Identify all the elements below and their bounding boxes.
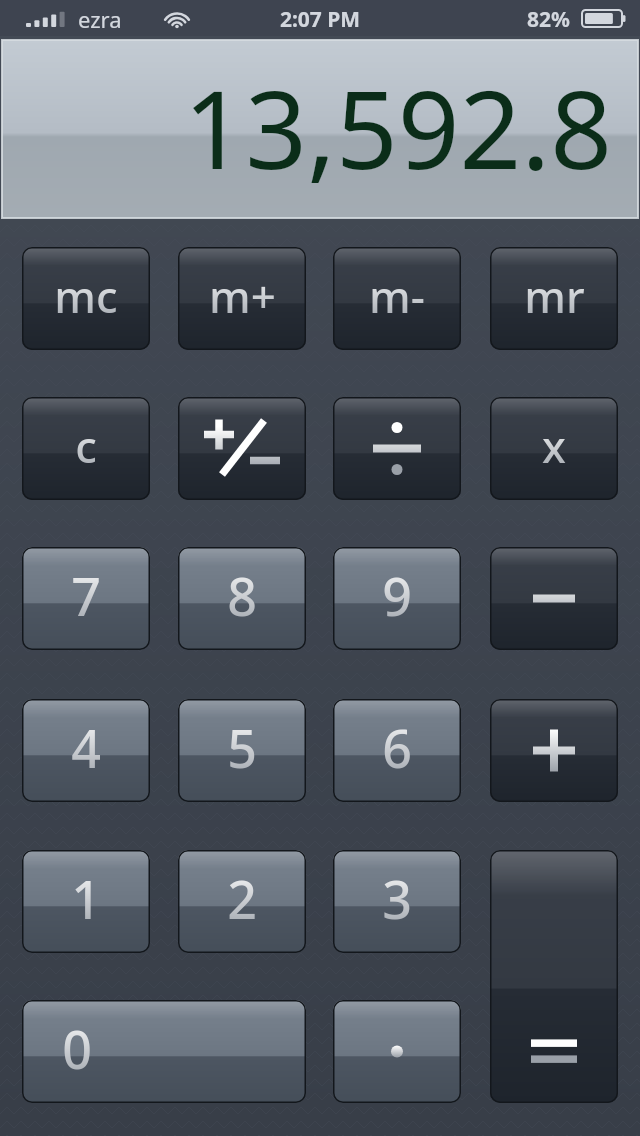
button[interactable]: x xyxy=(490,397,618,500)
button[interactable]: Divide xyxy=(333,397,461,500)
button[interactable]: 1 xyxy=(22,850,150,953)
button[interactable]: mr xyxy=(490,247,618,350)
button[interactable]: c xyxy=(22,397,150,500)
staticText: 7 xyxy=(71,560,101,631)
button[interactable]: m+ xyxy=(178,247,306,350)
staticText: 0 xyxy=(62,1013,92,1084)
staticText: 4 xyxy=(71,712,101,783)
staticText: m+ xyxy=(209,266,276,326)
button[interactable]: Equals xyxy=(490,850,618,1103)
staticText: 2:07 PM xyxy=(0,5,640,31)
button[interactable]: Plus xyxy=(490,699,618,802)
button[interactable]: Decimal point xyxy=(333,1000,461,1103)
button[interactable]: 8 xyxy=(178,547,306,650)
button[interactable]: 3 xyxy=(333,850,461,953)
staticText: 13,592.8 xyxy=(2,54,612,204)
staticText: ezra xyxy=(78,4,122,34)
button[interactable]: m- xyxy=(333,247,461,350)
staticText: mc xyxy=(54,266,118,326)
staticText: 5 xyxy=(227,712,257,783)
button[interactable]: 0 xyxy=(22,1000,306,1103)
staticText: c xyxy=(75,416,97,476)
button[interactable]: 6 xyxy=(333,699,461,802)
button[interactable]: Plus minus xyxy=(178,397,306,500)
button[interactable]: 5 xyxy=(178,699,306,802)
staticText: x xyxy=(542,416,566,476)
staticText: 8 xyxy=(227,560,257,631)
staticText: 82% xyxy=(527,5,570,34)
button[interactable]: 9 xyxy=(333,547,461,650)
staticText: 1 xyxy=(71,863,101,934)
button[interactable]: 7 xyxy=(22,547,150,650)
button[interactable]: Minus xyxy=(490,547,618,650)
staticText: mr xyxy=(524,266,585,326)
staticText: 3 xyxy=(382,863,412,934)
button[interactable]: mc xyxy=(22,247,150,350)
staticText: m- xyxy=(369,266,425,326)
staticText: 6 xyxy=(382,712,412,783)
staticText: 2 xyxy=(227,863,257,934)
button[interactable]: 2 xyxy=(178,850,306,953)
staticText: 9 xyxy=(382,560,412,631)
button[interactable]: 4 xyxy=(22,699,150,802)
